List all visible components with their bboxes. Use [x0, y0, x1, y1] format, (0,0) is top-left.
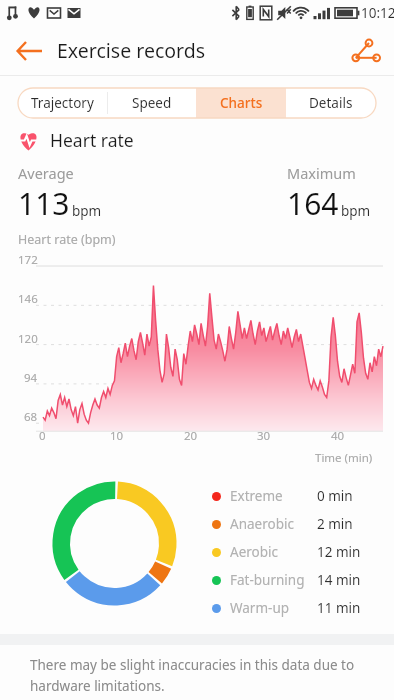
- button[interactable]: Anaerobic: [212, 510, 372, 538]
- staticText: bpm: [72, 202, 102, 220]
- staticText: 0 min: [317, 487, 353, 505]
- staticText: 172: [18, 252, 38, 268]
- staticText: Details: [309, 94, 353, 112]
- button[interactable]: Speed: [107, 88, 196, 118]
- staticText: 20: [184, 428, 198, 444]
- staticText: Aerobic: [230, 543, 278, 561]
- staticText: 113: [18, 183, 70, 224]
- staticText: 14 min: [317, 571, 361, 589]
- staticText: bpm: [341, 202, 371, 220]
- staticText: Extreme: [230, 487, 283, 505]
- staticText: Speed: [132, 94, 172, 112]
- staticText: Charts: [220, 94, 263, 112]
- staticText: 2 min: [317, 515, 353, 533]
- staticText: Trajectory: [31, 94, 94, 112]
- staticText: 10: [110, 428, 124, 444]
- staticText: Anaerobic: [230, 515, 294, 533]
- staticText: 40: [331, 428, 345, 444]
- staticText: 164: [287, 183, 339, 224]
- staticText: 0: [39, 428, 46, 444]
- staticText: 12 min: [317, 543, 361, 561]
- button[interactable]: Details: [286, 88, 376, 118]
- staticText: Fat-burning: [230, 571, 305, 589]
- staticText: Heart rate (bpm): [18, 231, 116, 248]
- button[interactable]: Trajectory: [18, 88, 107, 118]
- button[interactable]: Extreme: [212, 482, 372, 510]
- staticText: There may be slight inaccuracies in this…: [30, 656, 355, 695]
- staticText: Warm-up: [230, 599, 290, 617]
- staticText: Heart rate: [50, 128, 134, 152]
- staticText: 68: [24, 409, 38, 425]
- button[interactable]: Charts: [196, 88, 286, 118]
- staticText: Exercise records: [57, 37, 206, 64]
- staticText: 30: [257, 428, 271, 444]
- staticText: Time (min): [315, 450, 373, 466]
- staticText: 146: [18, 291, 38, 307]
- staticText: 94: [24, 370, 38, 386]
- staticText: Maximum: [287, 163, 356, 183]
- button[interactable]: Warm-up: [212, 594, 372, 622]
- button[interactable]: Aerobic: [212, 538, 372, 566]
- button[interactable]: Fat-burning: [212, 566, 372, 594]
- button[interactable]: Back: [10, 31, 50, 71]
- staticText: 10:12: [361, 4, 394, 22]
- button[interactable]: Share: [345, 31, 385, 71]
- staticText: 11 min: [317, 599, 361, 617]
- staticText: 120: [18, 331, 38, 347]
- staticText: Average: [18, 163, 74, 183]
